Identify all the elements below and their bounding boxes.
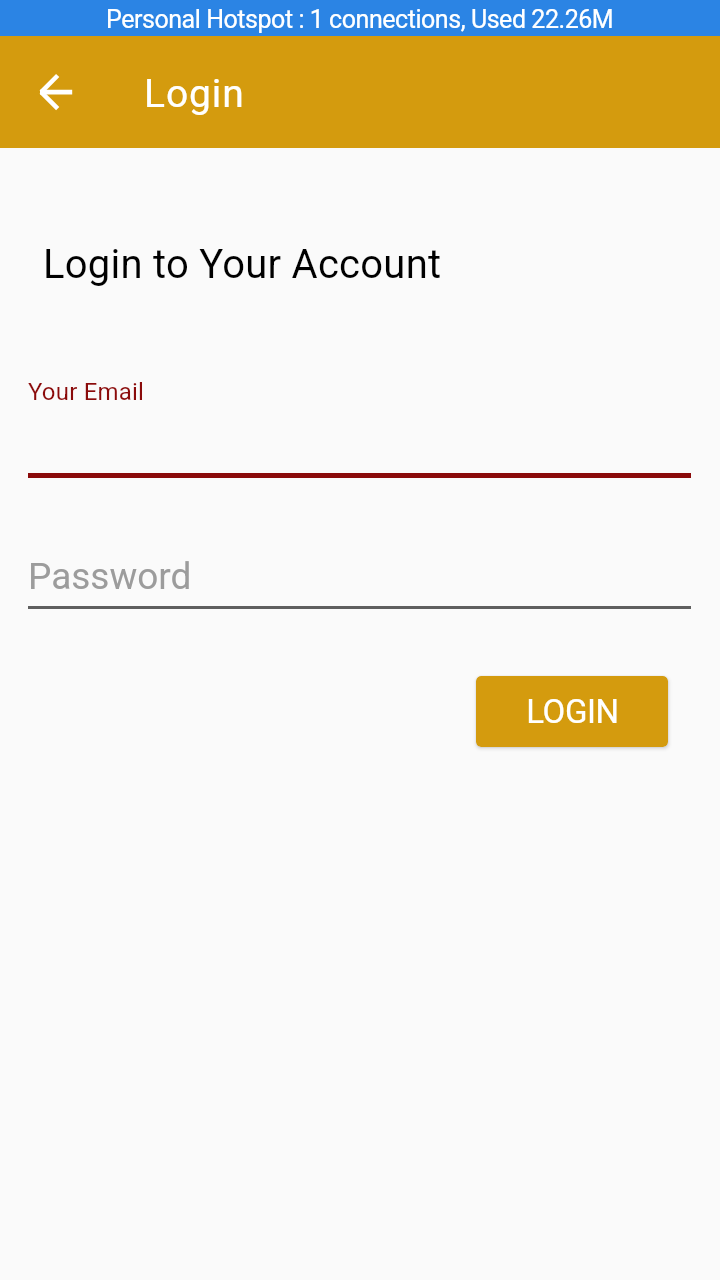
staticText: LOGIN [526,692,619,731]
button[interactable]: LOGIN [476,676,668,747]
button[interactable]: Your Email text field [28,373,691,478]
staticText: Your Email [28,378,145,406]
staticText: Password [28,555,192,598]
staticText: Login [144,71,245,117]
staticText: Login to Your Account [43,241,442,288]
button[interactable]: Navigate up [28,64,84,120]
staticText: Personal Hotspot : 1 connections, Used 2… [106,5,614,34]
button[interactable]: Password text field [28,549,691,609]
